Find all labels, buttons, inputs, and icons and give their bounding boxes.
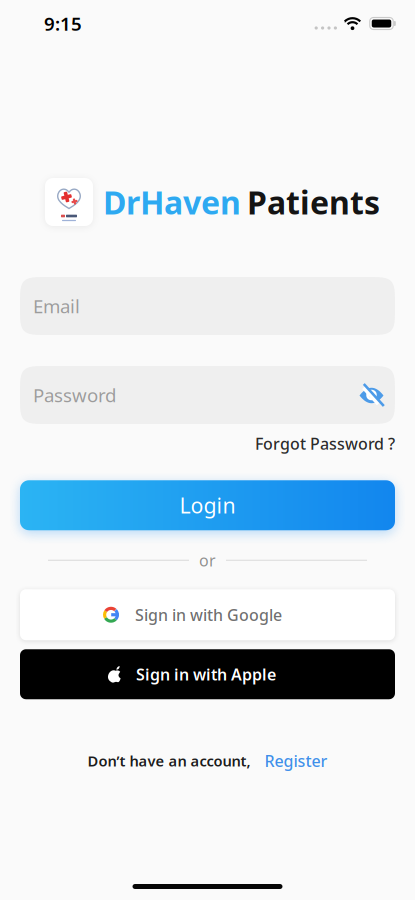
- staticText: Forgot Password ?: [255, 433, 395, 454]
- button[interactable]: Show password: [359, 383, 395, 407]
- button[interactable]: Forgot Password ?: [255, 433, 395, 454]
- staticText: Login: [179, 491, 235, 519]
- button[interactable]: Register: [264, 750, 327, 771]
- staticText: or: [199, 550, 216, 571]
- staticText: Patients: [247, 181, 380, 223]
- button[interactable]: Password: [20, 366, 395, 424]
- staticText: Email: [33, 294, 80, 318]
- staticText: 9:15: [44, 11, 82, 36]
- button[interactable]: Login: [20, 480, 395, 530]
- staticText: Sign in with Google: [135, 604, 282, 625]
- button[interactable]: Sign in with Google: [20, 589, 395, 640]
- button[interactable]: Email: [20, 277, 395, 335]
- staticText: Register: [264, 750, 327, 771]
- staticText: Sign in with Apple: [136, 664, 276, 685]
- button[interactable]: Sign in with Apple: [20, 649, 395, 699]
- staticText: Don’t have an account,: [87, 751, 250, 771]
- staticText: Password: [33, 383, 116, 407]
- staticText: DrHaven: [103, 181, 241, 223]
